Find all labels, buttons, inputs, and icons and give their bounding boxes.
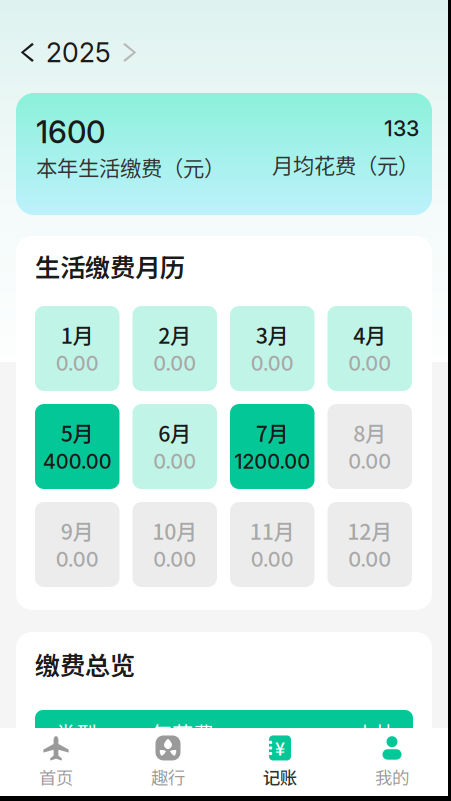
- staticText: 8月: [353, 417, 386, 448]
- button[interactable]: 首页: [0, 733, 112, 791]
- staticText: 缴费总览: [35, 646, 135, 682]
- staticText: 上比: [355, 718, 397, 748]
- button[interactable]: 12月: [327, 502, 412, 587]
- staticText: 首页: [39, 764, 73, 790]
- staticText: 月均花费（元）: [272, 149, 419, 180]
- staticText: 生活缴费月历: [35, 248, 185, 284]
- staticText: 1200.00: [234, 449, 310, 474]
- button[interactable]: ¥: [224, 733, 336, 791]
- staticText: 年花费: [151, 718, 214, 748]
- staticText: ¥: [275, 735, 285, 760]
- staticText: 7月: [256, 417, 289, 448]
- button[interactable]: 趣行: [112, 733, 224, 791]
- staticText: 0.00: [251, 547, 294, 572]
- staticText: 0.00: [56, 351, 99, 376]
- staticText: 本年生活缴费（元）: [36, 152, 225, 182]
- staticText: 0.00: [348, 351, 391, 376]
- staticText: 0.00: [56, 547, 99, 572]
- button[interactable]: 11月: [230, 502, 314, 587]
- button[interactable]: 10月: [132, 502, 217, 587]
- staticText: 类型: [55, 718, 97, 748]
- staticText: 1600: [36, 113, 105, 150]
- staticText: 趣行: [151, 764, 185, 790]
- staticText: 133: [384, 116, 419, 141]
- button[interactable]: 3月: [230, 306, 314, 391]
- button[interactable]: 我的: [336, 733, 448, 791]
- staticText: 0.00: [251, 351, 294, 376]
- staticText: 0.00: [348, 449, 391, 474]
- staticText: 2025: [46, 36, 111, 69]
- staticText: 400.00: [43, 449, 112, 474]
- staticText: 0.00: [348, 547, 391, 572]
- button[interactable]: 7月: [230, 404, 314, 489]
- staticText: 4月: [353, 319, 386, 350]
- staticText: 我的: [375, 764, 409, 790]
- button[interactable]: 1月: [35, 306, 119, 391]
- button[interactable]: 4月: [327, 306, 412, 391]
- button[interactable]: 5月: [35, 404, 119, 489]
- staticText: 0.00: [153, 351, 196, 376]
- button[interactable]: 8月: [327, 404, 412, 489]
- staticText: 0.00: [153, 547, 196, 572]
- staticText: 12月: [347, 515, 392, 546]
- staticText: 3月: [256, 319, 289, 350]
- button[interactable]: 6月: [132, 404, 217, 489]
- staticText: 记账: [263, 764, 297, 790]
- button[interactable]: 2月: [132, 306, 217, 391]
- staticText: 0.00: [153, 449, 196, 474]
- button[interactable]: 9月: [35, 502, 119, 587]
- staticText: 5月: [61, 417, 94, 448]
- staticText: 9月: [61, 515, 94, 546]
- button[interactable]: 下一年: [115, 35, 146, 70]
- staticText: 11月: [250, 515, 295, 546]
- staticText: 10月: [152, 515, 197, 546]
- staticText: 6月: [158, 417, 191, 448]
- staticText: 2月: [158, 319, 191, 350]
- staticText: 1月: [61, 319, 94, 350]
- button[interactable]: 上一年: [11, 35, 42, 70]
